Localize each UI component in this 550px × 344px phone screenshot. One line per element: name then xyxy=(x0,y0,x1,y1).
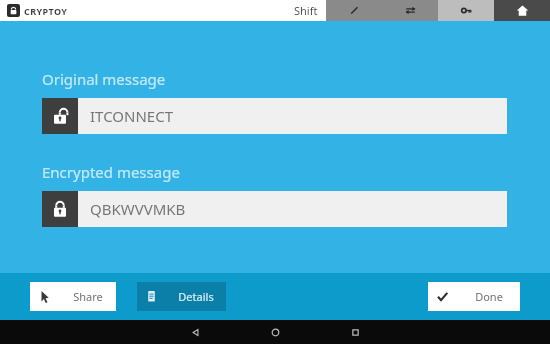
staticText: Details xyxy=(178,289,214,304)
button[interactable]: ITCONNECT xyxy=(42,98,507,134)
button[interactable]: CRYPTOY xyxy=(0,4,68,17)
button[interactable]: Home xyxy=(235,320,315,344)
button[interactable]: Done xyxy=(428,282,520,311)
staticText: Original message xyxy=(42,69,166,89)
staticText: Done xyxy=(475,289,503,304)
staticText: QBKWVVMKB xyxy=(90,199,186,219)
button[interactable]: Details xyxy=(137,282,226,311)
button[interactable]: Share xyxy=(30,282,116,311)
button[interactable]: Swap xyxy=(382,0,438,21)
button[interactable]: Key xyxy=(438,0,494,21)
button[interactable]: Shift xyxy=(286,3,326,18)
button[interactable]: Edit xyxy=(326,0,382,21)
button[interactable]: Recents xyxy=(315,320,395,344)
button[interactable]: Back xyxy=(155,320,235,344)
staticText: Share xyxy=(73,289,103,304)
staticText: CRYPTOY xyxy=(24,5,68,17)
button[interactable]: Home xyxy=(494,0,550,21)
staticText: Encrypted message xyxy=(42,162,180,182)
staticText: ITCONNECT xyxy=(90,106,173,126)
button[interactable]: QBKWVVMKB xyxy=(42,191,507,227)
